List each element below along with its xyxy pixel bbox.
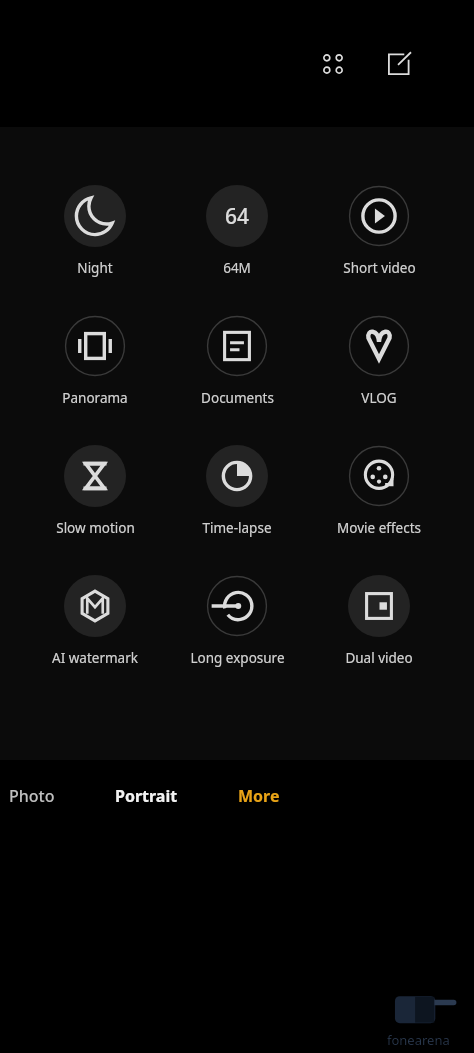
staticText: 64M xyxy=(223,259,251,277)
staticText: fonearena xyxy=(387,1031,450,1049)
button[interactable]: Photo xyxy=(3,779,61,813)
staticText: Slow motion xyxy=(56,519,135,537)
staticText: Night xyxy=(77,259,113,277)
button[interactable]: Reorder modes xyxy=(310,41,356,87)
staticText: Dual video xyxy=(345,649,413,667)
staticText: More xyxy=(238,785,280,807)
button[interactable]: More xyxy=(232,779,286,813)
staticText: AI watermark xyxy=(52,649,138,667)
staticText: 64 xyxy=(225,202,250,231)
staticText: Movie effects xyxy=(337,519,421,537)
button[interactable]: Panorama xyxy=(24,315,166,407)
button[interactable]: Edit modes xyxy=(376,41,422,87)
button[interactable]: Portrait xyxy=(109,779,184,813)
button[interactable]: AI watermark xyxy=(24,575,166,667)
button[interactable]: Time-lapse xyxy=(166,445,308,537)
staticText: Long exposure xyxy=(190,649,285,667)
button[interactable]: Dual video xyxy=(308,575,450,667)
button[interactable]: Short video xyxy=(308,185,450,277)
staticText: Documents xyxy=(201,389,274,407)
staticText: VLOG xyxy=(361,389,397,407)
staticText: Photo xyxy=(9,785,55,807)
button[interactable]: VLOG xyxy=(308,315,450,407)
button[interactable]: Movie effects xyxy=(308,445,450,537)
staticText: Portrait xyxy=(115,785,178,807)
button[interactable]: Long exposure xyxy=(166,575,308,667)
staticText: Panorama xyxy=(62,389,128,407)
button[interactable]: Night xyxy=(24,185,166,277)
staticText: Time-lapse xyxy=(202,519,272,537)
button[interactable]: Slow motion xyxy=(24,445,166,537)
button[interactable]: 64 xyxy=(166,185,308,277)
staticText: Short video xyxy=(343,259,416,277)
button[interactable]: Documents xyxy=(166,315,308,407)
